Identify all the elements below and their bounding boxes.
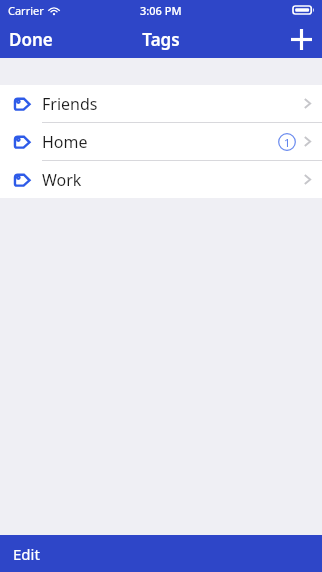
- button[interactable]: Add tag: [281, 20, 322, 58]
- staticText: Work: [42, 169, 82, 191]
- staticText: Carrier: [8, 3, 44, 18]
- staticText: Edit: [13, 544, 40, 564]
- staticText: Done: [9, 28, 53, 51]
- button[interactable]: Edit: [0, 535, 53, 572]
- button[interactable]: Work: [0, 161, 322, 198]
- staticText: 1: [284, 135, 291, 150]
- button[interactable]: Friends: [0, 85, 322, 123]
- staticText: Home: [42, 131, 88, 153]
- button[interactable]: Done: [0, 20, 62, 58]
- staticText: Tags: [142, 28, 180, 51]
- staticText: Friends: [42, 93, 98, 115]
- button[interactable]: Home: [0, 123, 322, 161]
- staticText: 3:06 PM: [140, 3, 182, 18]
